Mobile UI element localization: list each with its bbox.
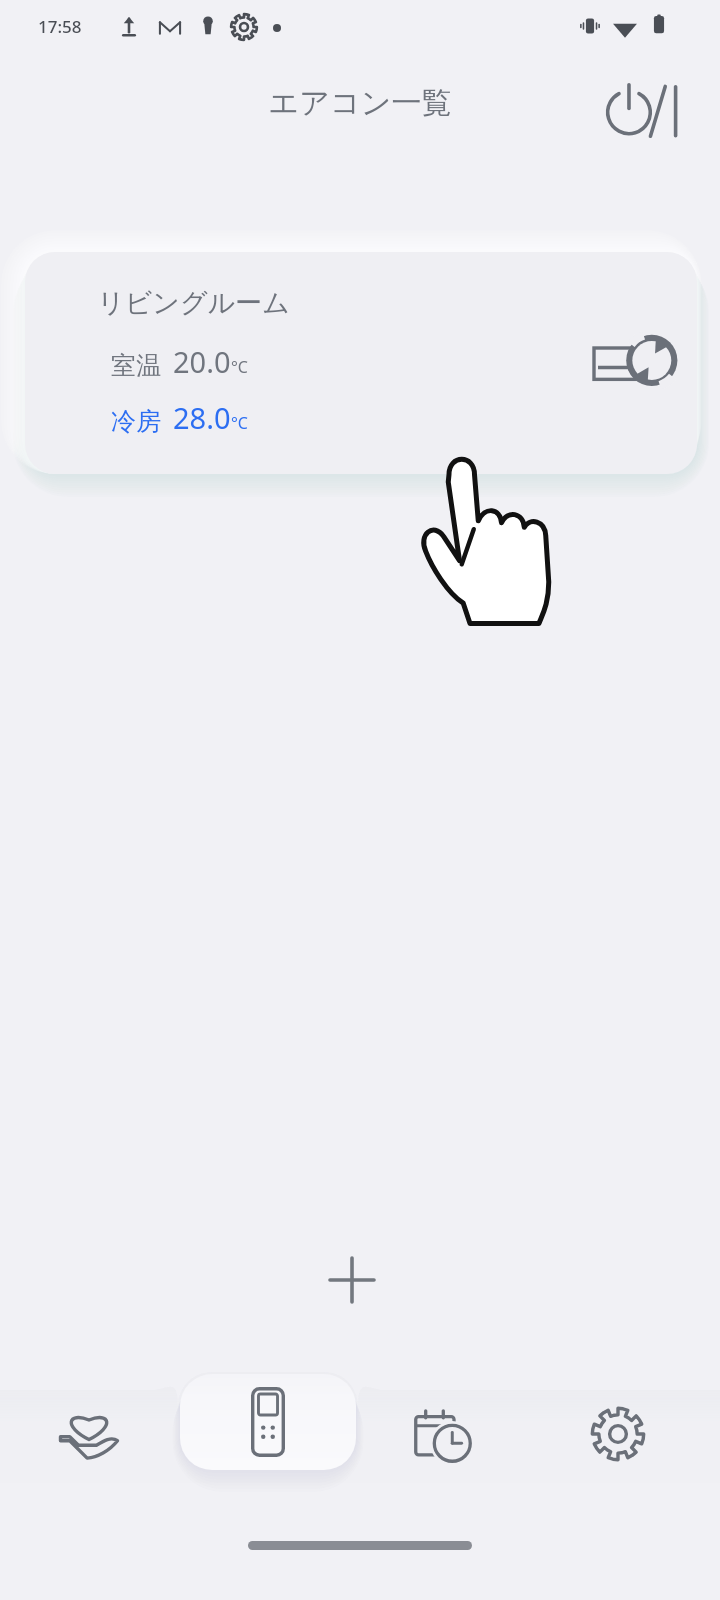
- button[interactable]: Favorites: [44, 1392, 134, 1476]
- staticText: 20.0: [173, 342, 231, 381]
- button[interactable]: Power: [598, 74, 694, 144]
- staticText: 28.0: [173, 398, 231, 437]
- staticText: 17:58: [38, 15, 82, 38]
- staticText: リビングルーム: [97, 286, 290, 320]
- button[interactable]: Schedule: [398, 1392, 488, 1476]
- staticText: °C: [231, 412, 248, 434]
- staticText: 室温: [111, 350, 161, 381]
- button[interactable]: リビングルーム: [25, 252, 697, 474]
- button[interactable]: Remote control: [223, 1376, 313, 1468]
- button[interactable]: Add air conditioner: [312, 1240, 392, 1320]
- button[interactable]: Settings: [573, 1392, 663, 1476]
- staticText: °C: [231, 356, 248, 378]
- staticText: エアコン一覧: [0, 84, 720, 122]
- staticText: 冷房: [111, 406, 161, 437]
